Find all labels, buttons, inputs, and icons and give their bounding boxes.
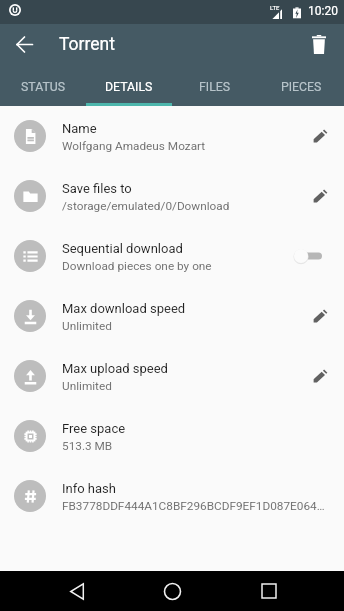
staticText: 513.3 MB [62, 439, 113, 453]
button[interactable]: Back [53, 571, 97, 611]
button[interactable]: Max upload speed [0, 346, 344, 406]
button[interactable]: Edit Name [298, 114, 342, 158]
staticText: PIECES [281, 80, 322, 94]
button[interactable]: PIECES [258, 64, 344, 106]
staticText: Download pieces one by one [62, 259, 212, 273]
staticText: Max download speed [62, 301, 186, 316]
staticText: /storage/emulated/0/Download [62, 199, 230, 213]
button[interactable]: Save files to [0, 166, 344, 226]
staticText: Unlimited [62, 379, 112, 393]
staticText: FB3778DDF444A1C8BF296BCDF9EF1D087E064E… [62, 499, 328, 513]
staticText: Info hash [62, 481, 116, 496]
staticText: Save files to [62, 181, 132, 196]
staticText: Unlimited [62, 319, 112, 333]
button[interactable]: FILES [172, 64, 258, 106]
staticText: Torrent [59, 34, 115, 55]
button[interactable]: Info hash [0, 466, 344, 526]
button[interactable]: Name [0, 106, 344, 166]
button[interactable]: Edit Save files to [298, 174, 342, 218]
button[interactable]: Edit Max upload speed [298, 354, 342, 398]
button[interactable]: DETAILS [86, 64, 172, 106]
staticText: 10:20 [308, 4, 338, 18]
staticText: Max upload speed [62, 361, 168, 376]
staticText: Wolfgang Amadeus Mozart [62, 139, 206, 153]
button[interactable]: Edit Max download speed [298, 294, 342, 338]
staticText: FILES [199, 80, 231, 94]
staticText: Free space [62, 421, 126, 436]
button[interactable]: STATUS [0, 64, 86, 106]
button[interactable]: Recents [247, 571, 291, 611]
staticText: STATUS [21, 80, 66, 94]
button[interactable]: Back [6, 26, 42, 62]
staticText: Name [62, 121, 97, 136]
button[interactable]: Max download speed [0, 286, 344, 346]
button[interactable]: Home [150, 571, 194, 611]
staticText: DETAILS [105, 80, 153, 94]
button[interactable]: Delete [301, 26, 337, 62]
staticText: LTE [270, 4, 280, 11]
button[interactable]: Free space [0, 406, 344, 466]
button[interactable]: Sequential download [0, 226, 344, 286]
button[interactable]: Toggle Sequential download [298, 234, 342, 278]
staticText: Sequential download [62, 241, 183, 256]
